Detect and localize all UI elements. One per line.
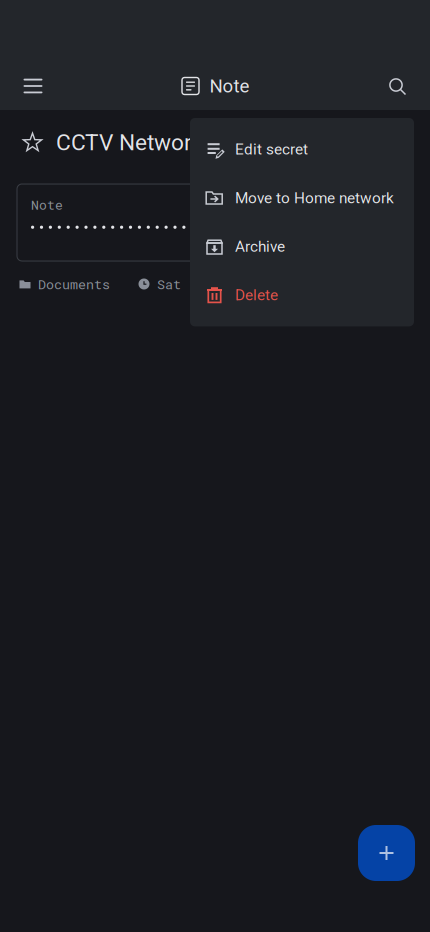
button[interactable]: Delete bbox=[190, 271, 414, 319]
button[interactable]: Favourite bbox=[22, 132, 43, 153]
staticText: Sat 15 Apr bbox=[157, 275, 237, 293]
staticText: Edit secret bbox=[235, 140, 308, 158]
staticText: Move to Home network bbox=[235, 189, 394, 207]
staticText: Documents bbox=[38, 275, 110, 293]
button[interactable]: Navigation menu bbox=[10, 63, 56, 109]
staticText: Delete bbox=[235, 286, 278, 304]
staticText: Note bbox=[31, 196, 63, 213]
staticText: Note bbox=[209, 75, 249, 97]
staticText: CCTV Network Password bbox=[56, 129, 309, 156]
button[interactable]: Search bbox=[374, 63, 420, 109]
button[interactable]: New note bbox=[358, 825, 415, 881]
button[interactable]: Archive bbox=[190, 222, 414, 271]
button[interactable]: Edit secret bbox=[190, 125, 414, 174]
button[interactable]: Move to Home network bbox=[190, 174, 414, 222]
staticText: Archive bbox=[235, 237, 285, 255]
